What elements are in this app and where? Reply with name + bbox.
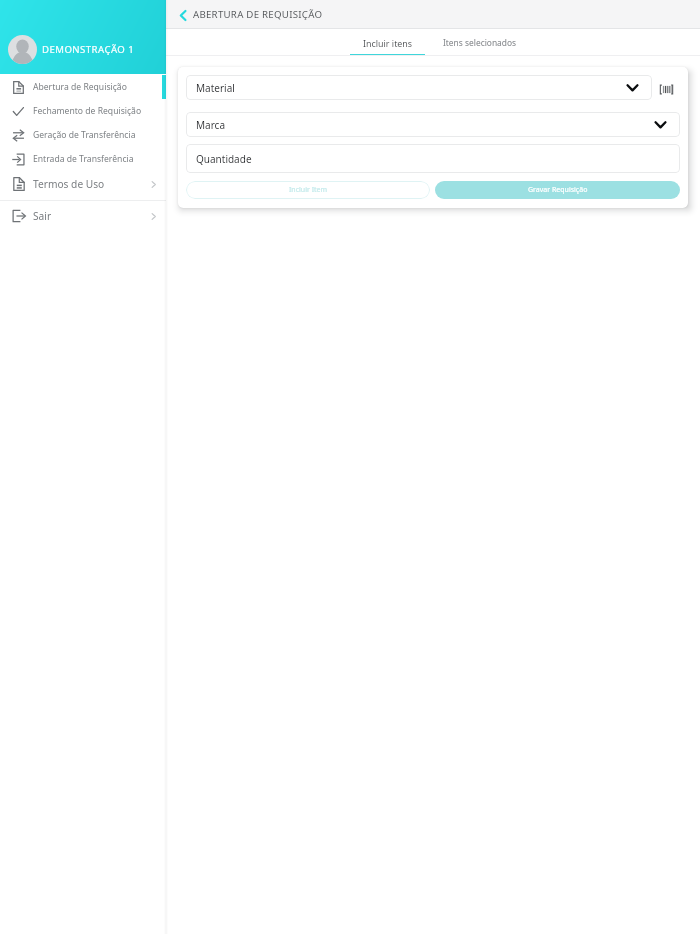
button[interactable]: Marca — [186, 112, 680, 137]
staticText: Fechamento de Requisição — [33, 105, 142, 117]
staticText: Abertura de Requisição — [33, 81, 127, 93]
staticText: ABERTURA DE REQUISIÇÃO — [193, 8, 323, 21]
button[interactable]: Incluir Item — [186, 181, 430, 199]
staticText: Incluir itens — [363, 37, 413, 49]
staticText: Material — [196, 81, 235, 95]
button[interactable]: Geração de Transferência — [0, 123, 166, 147]
staticText: Marca — [196, 118, 226, 132]
button[interactable]: Quantidade — [186, 144, 680, 173]
staticText: Itens selecionados — [443, 37, 517, 48]
staticText: Geração de Transferência — [33, 129, 136, 141]
button[interactable]: Sair — [0, 203, 166, 229]
staticText: Termos de Uso — [33, 177, 105, 191]
staticText: Entrada de Transferência — [33, 153, 134, 165]
staticText: Quantidade — [196, 152, 252, 166]
button[interactable]: Ler código de barras — [659, 82, 674, 97]
button[interactable]: Entrada de Transferência — [0, 147, 166, 171]
staticText: DEMONSTRAÇÃO 1 — [42, 43, 135, 56]
button[interactable]: Gravar Requisição — [435, 181, 680, 199]
button[interactable]: Material — [186, 75, 652, 100]
button[interactable]: Termos de Uso — [0, 171, 166, 197]
button[interactable]: Abertura de Requisição — [0, 75, 166, 99]
button[interactable]: Fechamento de Requisição — [0, 99, 166, 123]
staticText: Incluir Item — [289, 185, 328, 195]
button[interactable]: Itens selecionados — [432, 29, 527, 56]
staticText: Sair — [33, 209, 52, 223]
button[interactable]: Incluir itens — [350, 29, 425, 56]
staticText: Gravar Requisição — [528, 185, 588, 195]
button[interactable]: Voltar — [176, 8, 191, 23]
